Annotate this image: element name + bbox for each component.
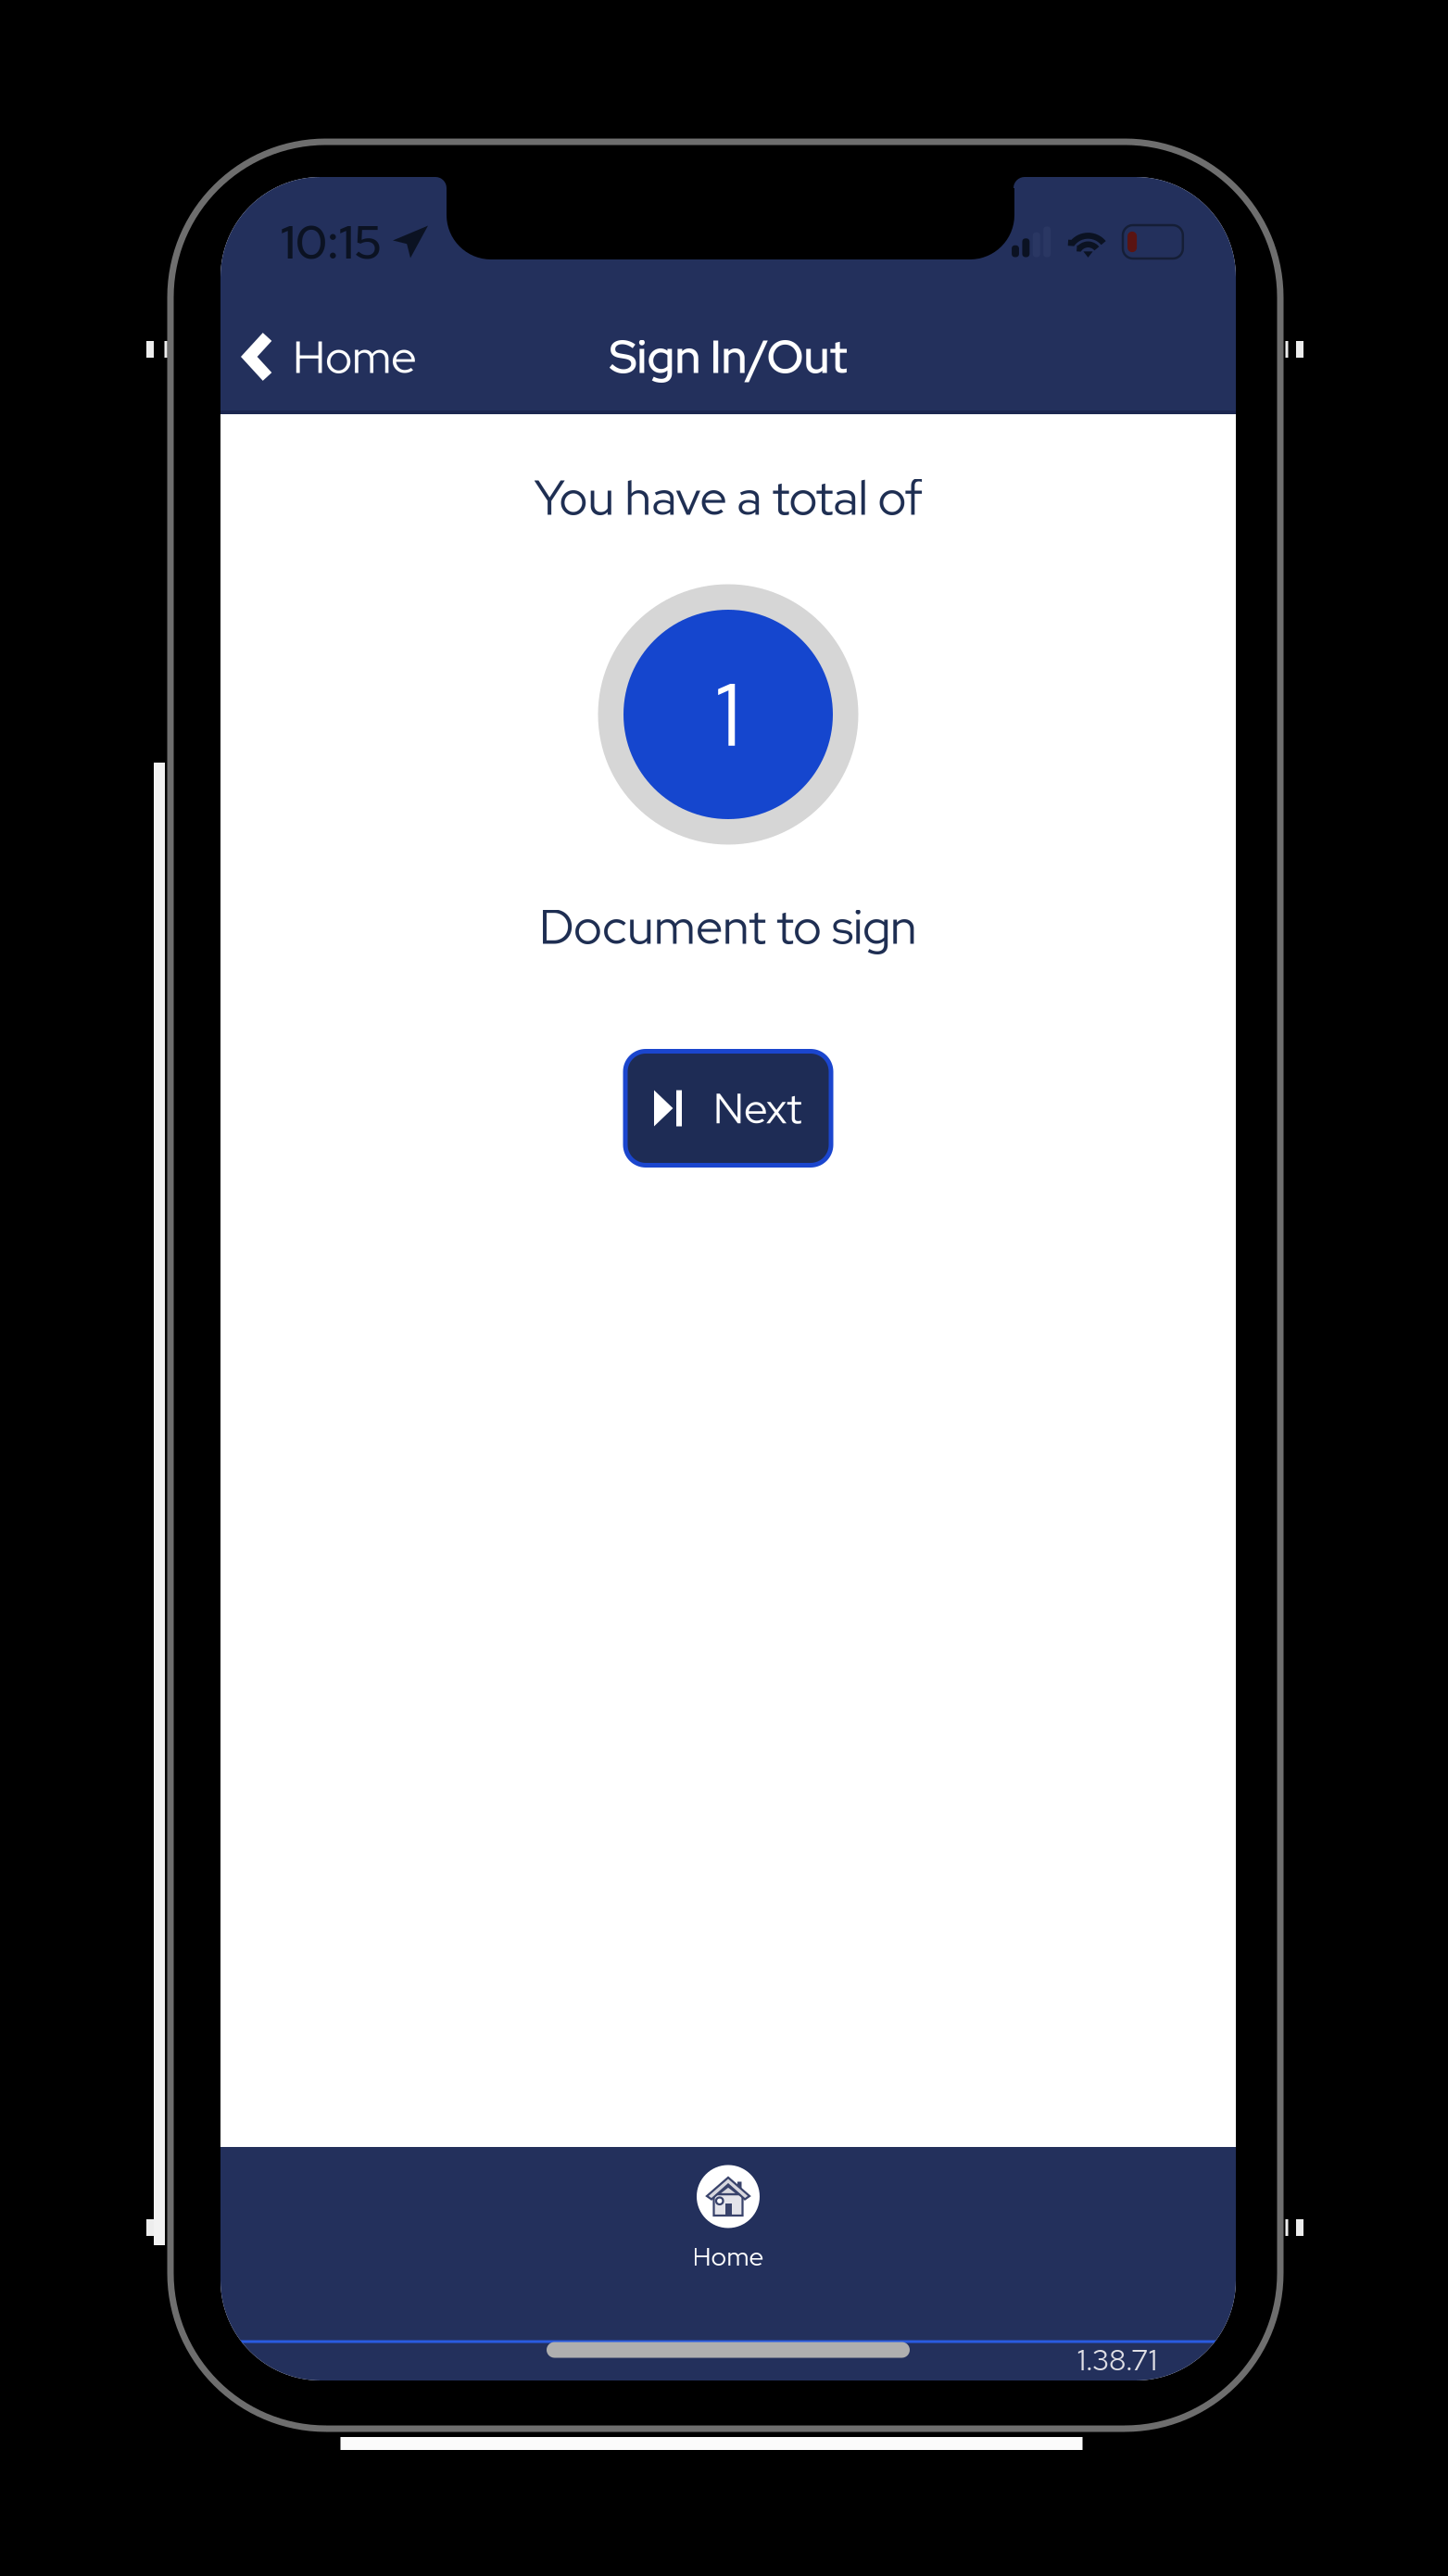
staticText: 1 (716, 656, 741, 772)
staticText: Home (293, 327, 417, 387)
staticText: Document to sign (539, 895, 917, 958)
staticText: Next (713, 1080, 802, 1136)
staticText: 10:15 (281, 211, 382, 273)
staticText: 1.38.71 (1077, 2341, 1157, 2379)
button[interactable]: Home (220, 315, 554, 398)
button[interactable]: Next (625, 1051, 831, 1165)
staticText: You have a total of (534, 466, 922, 529)
staticText: Home (693, 2239, 764, 2273)
staticText: Sign In/Out (609, 327, 847, 387)
button[interactable]: Home (626, 2159, 830, 2279)
